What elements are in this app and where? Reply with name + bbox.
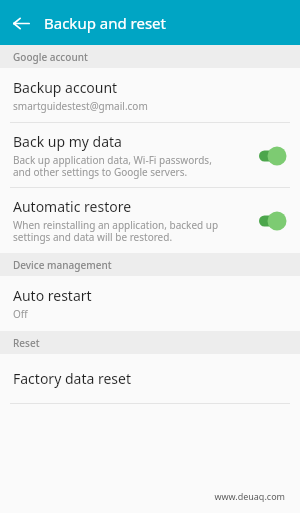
staticText: Google account (13, 50, 88, 64)
button[interactable]: Factory data reset (0, 354, 300, 403)
staticText: Device management (13, 258, 112, 272)
button[interactable]: Back (8, 10, 34, 36)
staticText: When reinstalling an application, backed… (13, 218, 219, 244)
button[interactable]: Automatic restore (0, 188, 300, 253)
staticText: Back up my data (13, 132, 122, 151)
staticText: Reset (13, 336, 40, 350)
button[interactable]: Auto restart (0, 276, 300, 331)
button[interactable]: Backup account (0, 68, 300, 122)
staticText: Backup and reset (44, 13, 166, 33)
staticText: Off (13, 307, 28, 321)
staticText: Back up application data, Wi-Fi password… (13, 153, 212, 179)
staticText: www.deuaq.com (214, 490, 285, 502)
staticText: Factory data reset (13, 369, 131, 388)
staticText: smartguidestest@gmail.com (13, 99, 148, 113)
button[interactable]: Back up my data (0, 123, 300, 187)
staticText: Auto restart (13, 286, 92, 305)
other: Toggle (257, 146, 287, 166)
other: Toggle (257, 211, 287, 231)
staticText: Backup account (13, 78, 118, 97)
staticText: Automatic restore (13, 197, 132, 216)
